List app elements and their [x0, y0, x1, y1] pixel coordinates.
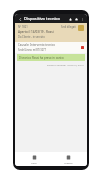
button[interactable]: Attach — [67, 16, 73, 22]
staticText: N° 1821 — [18, 25, 28, 29]
button[interactable]: More options — [79, 16, 85, 22]
staticText: inviato il martedì 14/03/19, 09:21 — [47, 63, 84, 66]
button[interactable]: Profile — [78, 25, 84, 31]
button[interactable]: Back — [17, 16, 23, 22]
button[interactable]: Causale: Intervento tecnico — [15, 42, 87, 53]
staticText: Note — [31, 161, 37, 164]
button[interactable]: Allegati — [54, 152, 82, 166]
staticText: Aperto il 14/03/19 - Rossi — [18, 30, 54, 34]
button[interactable]: Print — [73, 16, 79, 22]
staticText: Da Cliente - in servizio — [18, 35, 45, 39]
other: Alert — [81, 46, 84, 49]
staticText: Allegati — [64, 161, 73, 164]
staticText: Causale: Intervento tecnico — [18, 43, 55, 47]
button[interactable]: Il tecnico Rossi ha preso in carico — [17, 54, 85, 61]
staticText: Sedi dilegati — [61, 25, 76, 29]
button[interactable]: Note — [20, 152, 48, 166]
staticText: Sede/Linea: m/87/3277 — [18, 48, 47, 52]
staticText: Il tecnico Rossi ha preso in carico — [19, 56, 64, 60]
staticText: Dispositivo tecnico — [24, 16, 67, 21]
